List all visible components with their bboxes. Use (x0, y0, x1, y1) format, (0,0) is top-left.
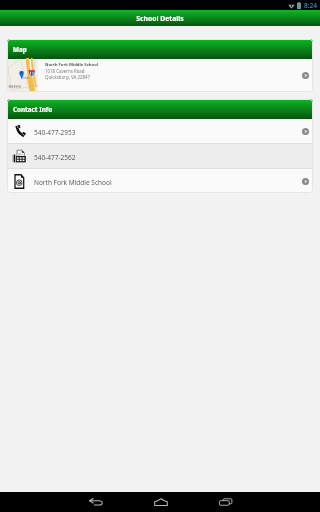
staticText: School Details (136, 14, 184, 23)
button[interactable]: Recent apps (209, 492, 242, 512)
staticText: Map (13, 45, 27, 54)
button[interactable]: 540-477-2953 (7, 119, 313, 143)
button[interactable]: North Fork Middle School (7, 59, 313, 92)
button[interactable]: Home (144, 492, 177, 512)
staticText: North Fork Middle School (34, 178, 112, 187)
staticText: 8:24 (304, 1, 318, 10)
button[interactable]: 540-477-2562 (7, 144, 313, 168)
staticText: Contact Info (13, 105, 53, 114)
button[interactable]: North Fork Middle School (7, 169, 313, 193)
button[interactable]: Back (79, 492, 112, 512)
staticText: Quicksburg, VA 22847 (45, 74, 90, 80)
staticText: North Fork Middle School (45, 62, 98, 68)
staticText: 540-477-2953 (34, 128, 76, 137)
staticText: 540-477-2562 (34, 153, 76, 162)
staticText: 1018 Caverns Road (45, 68, 85, 74)
